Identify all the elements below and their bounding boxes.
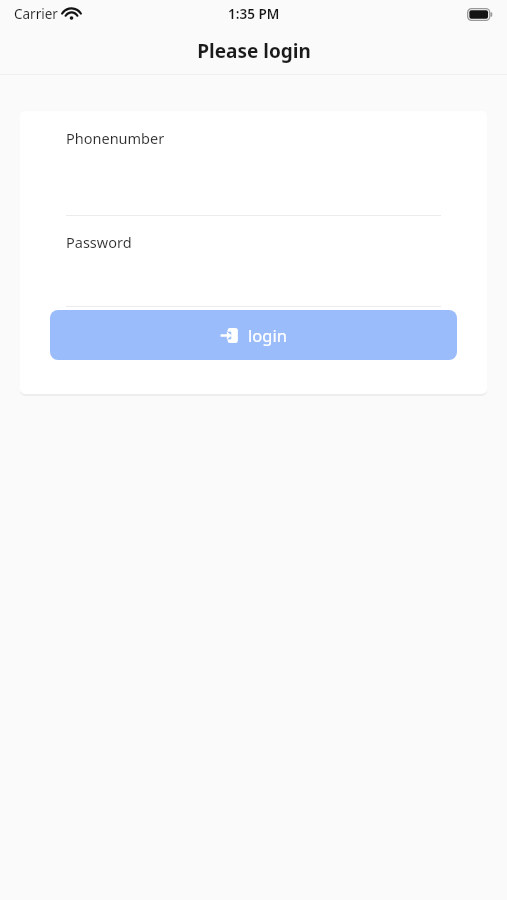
staticText: 1:35 PM xyxy=(228,5,280,23)
staticText: Please login xyxy=(197,38,311,64)
staticText: Carrier xyxy=(14,5,58,23)
button[interactable]: Phonenumber xyxy=(20,111,487,169)
staticText: login xyxy=(248,324,287,346)
staticText: Password xyxy=(66,232,132,252)
button[interactable]: Password xyxy=(20,216,487,274)
other: Login xyxy=(220,326,239,345)
button[interactable]: Login xyxy=(50,310,457,360)
staticText: Phonenumber xyxy=(66,128,165,148)
